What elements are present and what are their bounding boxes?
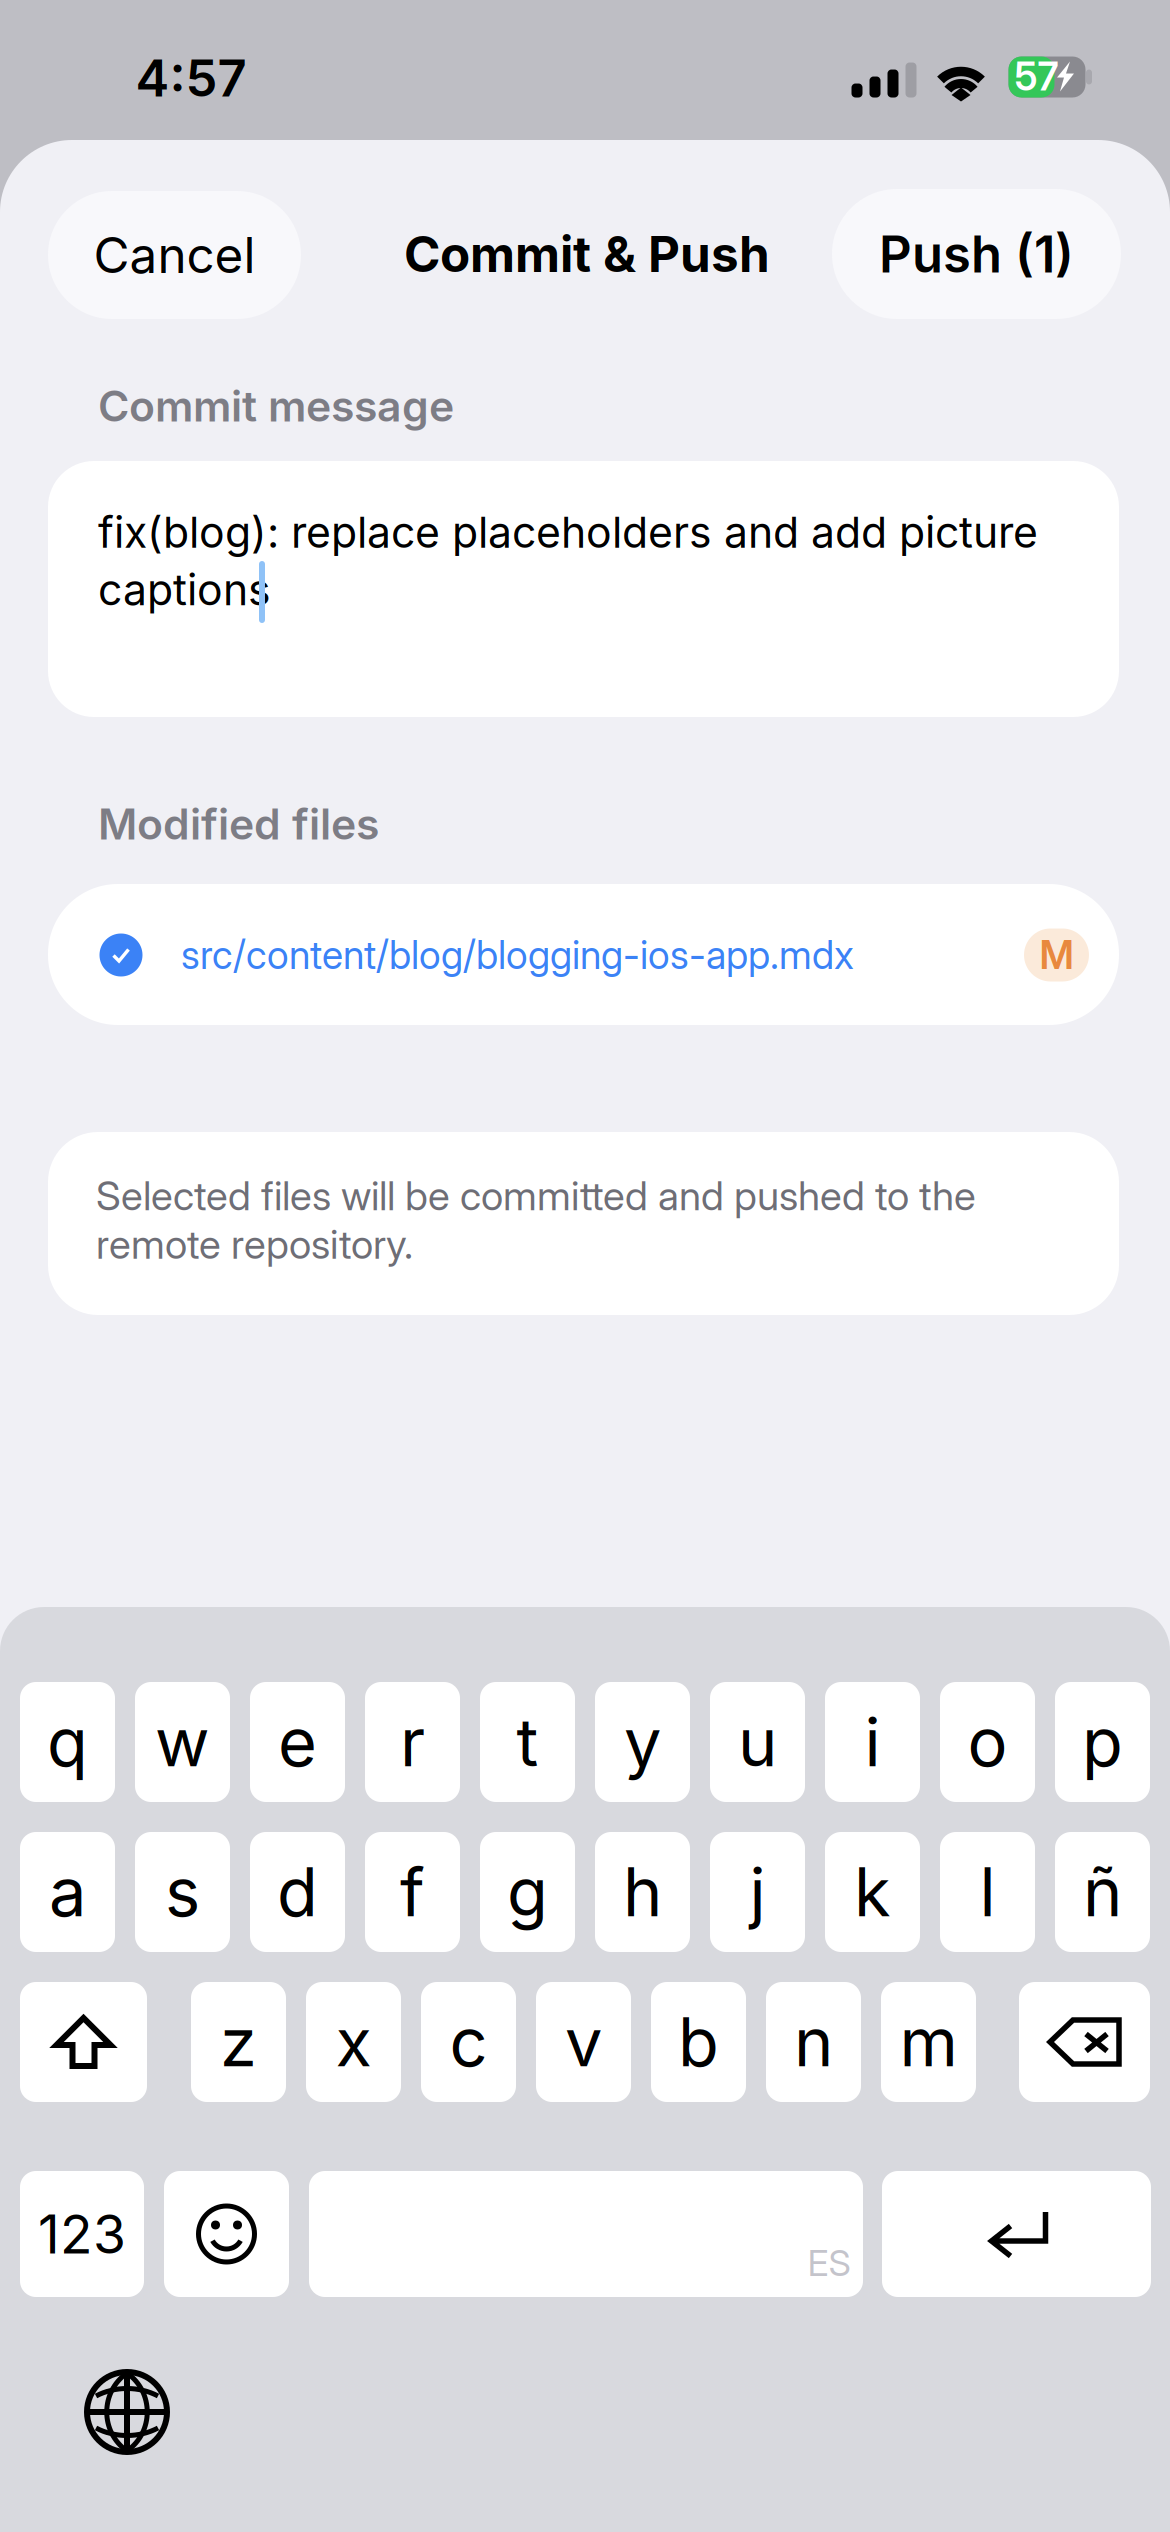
staticText: a — [49, 1852, 86, 1932]
staticText: M — [1039, 932, 1073, 978]
staticText: u — [738, 1702, 777, 1782]
button[interactable]: i — [825, 1682, 920, 1802]
staticText: fix(blog): replace placeholders and add … — [98, 506, 1038, 616]
staticText: Commit & Push — [404, 224, 770, 284]
staticText: Cancel — [93, 225, 255, 285]
staticText: j — [749, 1852, 765, 1932]
button[interactable]: y — [595, 1682, 690, 1802]
button[interactable]: Shift — [20, 1982, 147, 2102]
staticText: x — [335, 2002, 371, 2082]
staticText: m — [899, 2002, 957, 2082]
staticText: i — [864, 1702, 880, 1782]
button[interactable]: w — [135, 1682, 230, 1802]
button[interactable]: s — [135, 1832, 230, 1952]
button[interactable]: v — [536, 1982, 631, 2102]
button[interactable]: a — [20, 1832, 115, 1952]
staticText: r — [400, 1702, 425, 1782]
button[interactable]: Push (1) — [832, 189, 1121, 319]
staticText: ES — [807, 2241, 850, 2285]
button[interactable]: Delete — [1019, 1982, 1150, 2102]
staticText: 123 — [38, 2202, 126, 2266]
staticText: f — [400, 1852, 425, 1932]
staticText: Commit message — [98, 380, 454, 432]
button[interactable]: m — [881, 1982, 976, 2102]
button[interactable]: d — [250, 1832, 345, 1952]
staticText: h — [623, 1852, 662, 1932]
staticText: g — [507, 1852, 548, 1932]
staticText: o — [967, 1702, 1007, 1782]
staticText: src/content/blog/blogging-ios-app.mdx — [181, 932, 854, 978]
button[interactable]: l — [940, 1832, 1035, 1952]
staticText: Modified files — [98, 798, 379, 850]
staticText: ñ — [1083, 1852, 1122, 1932]
staticText: y — [624, 1702, 661, 1782]
button[interactable]: h — [595, 1832, 690, 1952]
staticText: t — [516, 1702, 538, 1782]
staticText: l — [979, 1852, 995, 1932]
button[interactable]: u — [710, 1682, 805, 1802]
button[interactable]: Return — [882, 2171, 1151, 2297]
staticText: d — [277, 1852, 318, 1932]
button[interactable]: f — [365, 1832, 460, 1952]
button[interactable]: ñ — [1055, 1832, 1150, 1952]
staticText: c — [449, 2002, 487, 2082]
staticText: q — [47, 1702, 88, 1782]
button[interactable]: p — [1055, 1682, 1150, 1802]
staticText: Selected files will be committed and pus… — [96, 1172, 976, 1268]
button[interactable]: q — [20, 1682, 115, 1802]
staticText: v — [565, 2002, 602, 2082]
staticText: e — [278, 1702, 317, 1782]
button[interactable]: Emoji — [164, 2171, 289, 2297]
button[interactable]: e — [250, 1682, 345, 1802]
button[interactable]: Next keyboard — [85, 2370, 169, 2454]
staticText: k — [854, 1852, 891, 1932]
button[interactable]: src/content/blog/blogging-ios-app.mdx — [48, 884, 1119, 1025]
staticText: z — [220, 2002, 257, 2082]
button[interactable]: x — [306, 1982, 401, 2102]
staticText: Push (1) — [879, 223, 1074, 285]
button[interactable]: g — [480, 1832, 575, 1952]
staticText: w — [155, 1702, 210, 1782]
staticText: p — [1082, 1702, 1123, 1782]
button[interactable]: Space — [309, 2171, 863, 2297]
button[interactable]: Cancel — [48, 191, 301, 319]
button[interactable]: b — [651, 1982, 746, 2102]
button[interactable]: k — [825, 1832, 920, 1952]
staticText: s — [165, 1852, 200, 1932]
staticText: n — [794, 2002, 833, 2082]
staticText: 57 — [1014, 53, 1058, 100]
button[interactable]: z — [191, 1982, 286, 2102]
button[interactable]: o — [940, 1682, 1035, 1802]
button[interactable]: t — [480, 1682, 575, 1802]
staticText: b — [678, 2002, 719, 2082]
button[interactable]: n — [766, 1982, 861, 2102]
button[interactable]: j — [710, 1832, 805, 1952]
button[interactable]: Numbers — [20, 2171, 144, 2297]
button[interactable]: c — [421, 1982, 516, 2102]
staticText: 4:57 — [135, 47, 246, 109]
button[interactable]: r — [365, 1682, 460, 1802]
